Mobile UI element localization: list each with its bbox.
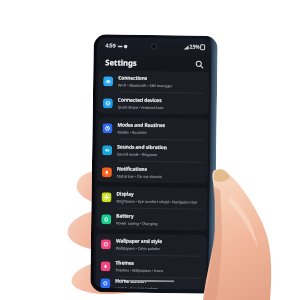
staticText: Sound mode • Ringtone [117,151,158,157]
staticText: Brightness • Eye comfort shield • Naviga… [116,198,197,205]
staticText: Modes • Routines [117,129,147,135]
staticText: Home screen [115,277,146,285]
staticText: Notifications [117,165,148,173]
staticText: Connected devices [118,96,162,104]
staticText: Sounds and vibration [117,143,167,151]
staticText: 25% [190,43,200,51]
button[interactable]: Connections [98,70,209,93]
staticText: Display [116,190,135,198]
button[interactable]: Themes [95,255,207,278]
button[interactable]: Display [96,186,208,209]
staticText: Wi-Fi • Bluetooth • SIM manager [118,82,173,88]
button[interactable]: Connected devices [98,92,209,115]
button[interactable]: Home screen [95,277,206,290]
button[interactable]: Settings [96,54,211,72]
button[interactable]: Modes and Routines [97,117,209,140]
other: Home gesture bar [127,280,174,282]
button[interactable]: Battery [96,208,207,231]
staticText: Battery [116,212,134,220]
staticText: Settings [105,57,137,68]
staticText: 4:59 [106,42,116,49]
button[interactable]: Wallpaper and style [96,233,207,256]
staticText: Modes and Routines [117,121,166,129]
button[interactable]: Notifications [97,161,208,184]
staticText: Quick Share • Android Auto [118,104,164,110]
button[interactable]: Search [193,58,204,70]
staticText: Wallpapers • Color palette [116,245,160,251]
staticText: Themes [116,259,135,267]
staticText: Status bar • Do not disturb [117,173,162,179]
staticText: Themes • Wallpapers • Icons [115,267,164,273]
staticText: Wallpaper and style [116,237,163,245]
staticText: Power saving • Charging [116,220,158,226]
staticText: Layout • App icon badges [115,285,158,289]
button[interactable]: Sounds and vibration [97,139,208,162]
staticText: Connections [118,74,148,82]
